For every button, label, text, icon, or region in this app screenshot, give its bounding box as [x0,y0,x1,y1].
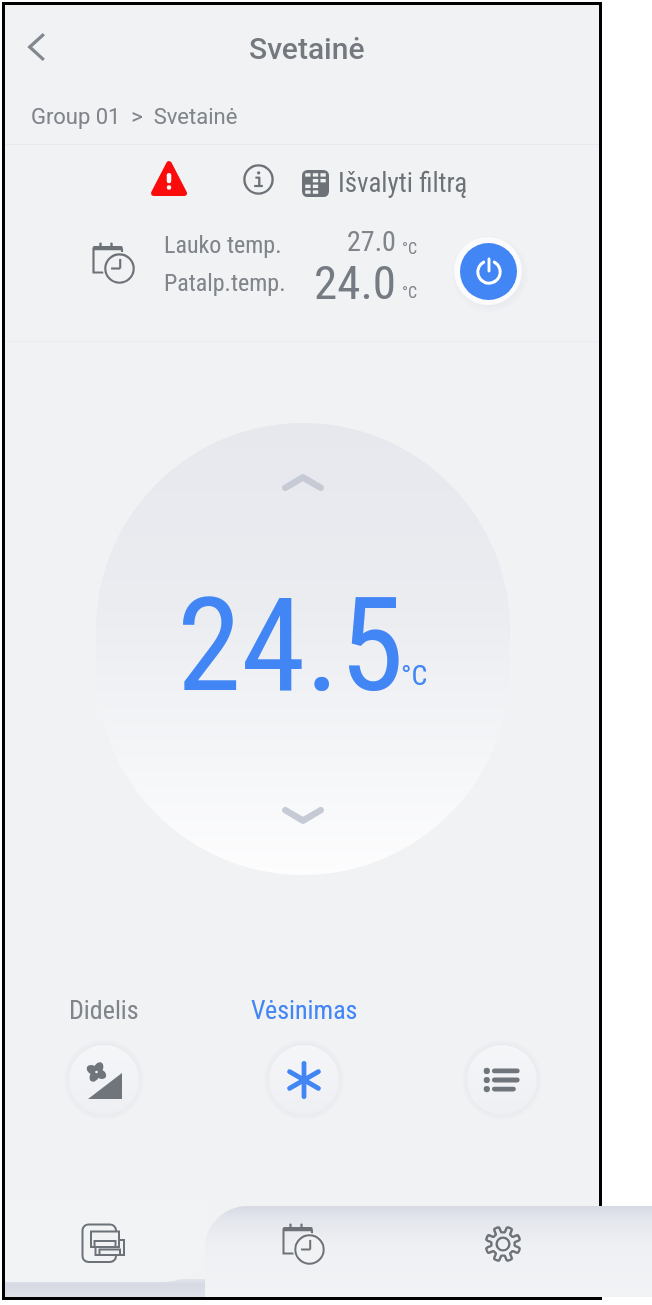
button[interactable]: More options [422,994,582,1121]
button[interactable]: Decrease temperature [273,785,333,845]
button[interactable]: Power [448,231,528,311]
staticText: °C [402,283,418,302]
staticText: Didelis [69,995,139,1025]
staticText: Group 01 > Svetainė [31,104,238,130]
button[interactable]: Alarm [147,157,191,201]
staticText: °C [401,659,428,692]
staticText: Svetainė [249,31,365,66]
button[interactable]: Increase temperature [273,453,333,513]
staticText: Patalp.temp. [164,269,286,297]
staticText: 24.0 [314,255,396,310]
staticText: Išvalyti filtrą [338,167,468,199]
button[interactable]: Settings [402,1206,600,1282]
button[interactable]: Temperature dial [96,423,510,875]
staticText: Lauko temp. [164,231,282,259]
button[interactable]: Operation mode [224,994,384,1121]
button[interactable]: Fan speed [24,994,184,1121]
staticText: Vėsinimas [251,995,358,1025]
button[interactable]: Information [236,157,280,201]
staticText: 24.5 [177,569,404,721]
button[interactable]: Schedule [84,234,144,294]
button[interactable]: Devices [6,1206,204,1282]
staticText: °C [402,239,418,258]
button[interactable]: Išvalyti filtrą [298,161,472,205]
button[interactable]: Back [11,21,63,73]
button[interactable]: Schedule [204,1206,402,1282]
staticText: 27.0 [347,225,396,258]
